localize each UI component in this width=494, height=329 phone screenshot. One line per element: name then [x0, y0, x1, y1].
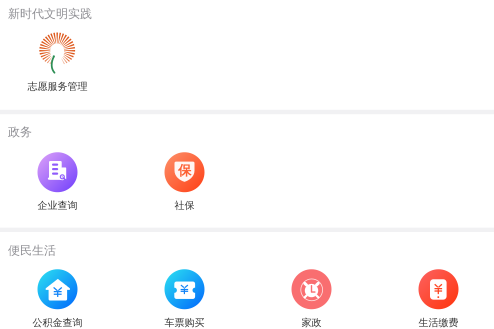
button[interactable]: 家政	[248, 269, 375, 329]
staticText: 家政	[301, 316, 321, 329]
staticText: 公积金查询	[32, 316, 82, 329]
button[interactable]: 生活缴费	[375, 269, 494, 329]
staticText: 车票购买	[164, 316, 204, 329]
button[interactable]: 保	[121, 152, 248, 212]
button[interactable]: 公积金查询	[0, 269, 121, 329]
staticText: 社保	[174, 199, 194, 212]
staticText: 保	[178, 162, 191, 179]
button[interactable]: 志愿服务管理	[0, 33, 121, 93]
staticText: 企业查询	[37, 199, 77, 212]
button[interactable]: 车票购买	[121, 269, 248, 329]
staticText: 志愿服务管理	[27, 80, 87, 93]
staticText: 新时代文明实践	[8, 6, 92, 21]
button[interactable]: 企业查询	[0, 152, 121, 212]
staticText: 生活缴费	[418, 316, 458, 329]
staticText: 政务	[8, 124, 32, 140]
staticText: 便民生活	[8, 243, 56, 258]
